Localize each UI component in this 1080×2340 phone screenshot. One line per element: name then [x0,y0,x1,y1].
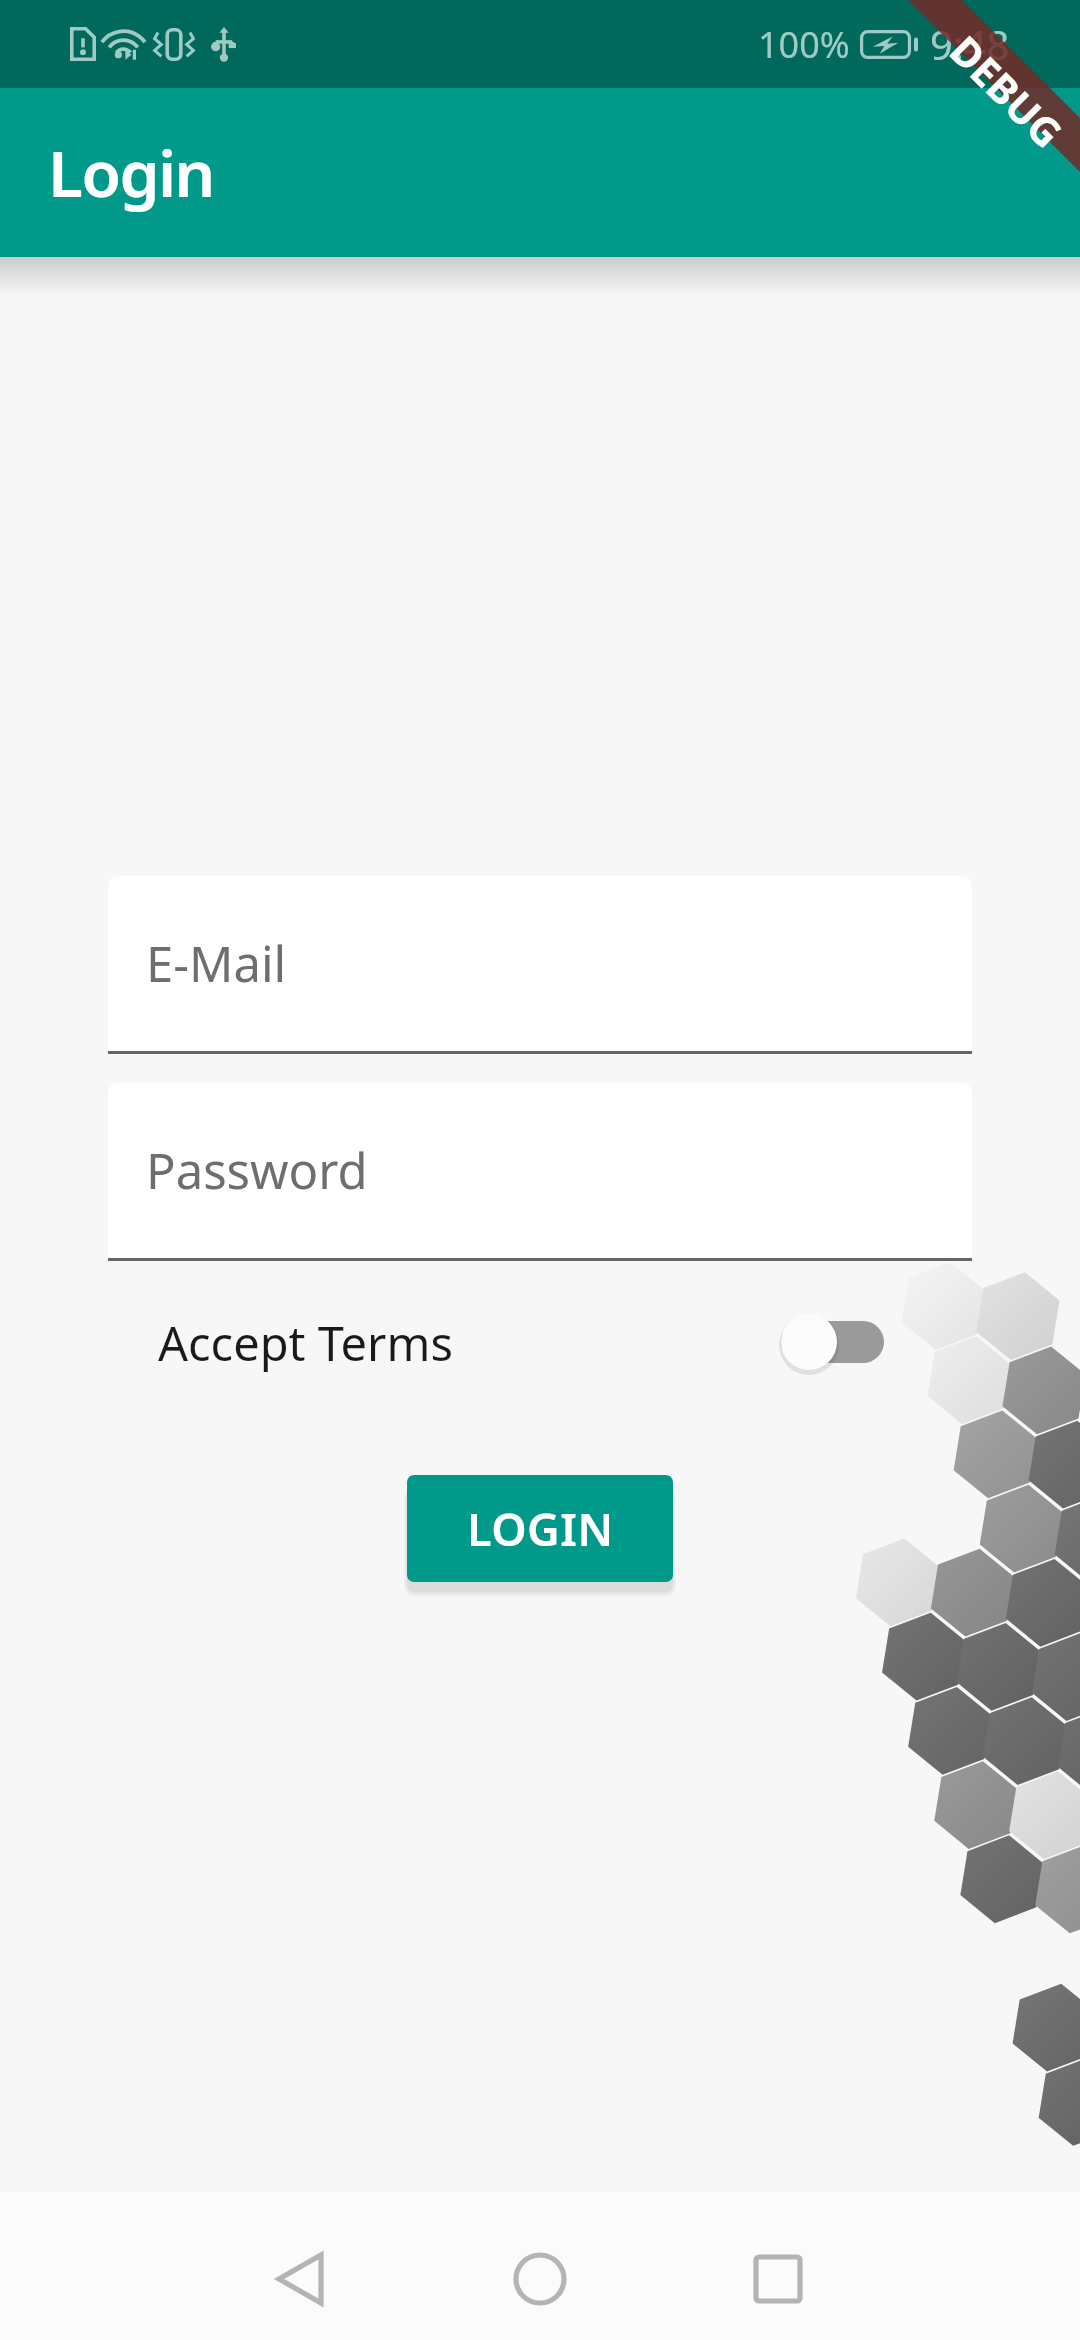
button[interactable]: LOGIN [407,1475,673,1582]
button[interactable]: Accept Terms [158,1311,884,1373]
staticText: 100% [758,20,850,69]
staticText: E-Mail [146,930,287,997]
staticText: LOGIN [467,1498,614,1559]
staticText: Login [48,129,214,216]
button[interactable]: Password [108,1083,972,1258]
staticText: Password [146,1137,368,1204]
staticText: Accept Terms [158,1311,453,1373]
button[interactable]: Back [228,2218,372,2340]
button[interactable]: Home [468,2218,612,2340]
button[interactable]: Recent apps [706,2218,850,2340]
staticText: DEBUG [939,23,1075,159]
staticText: 9:48 [930,17,1010,71]
button[interactable]: E-Mail [108,876,972,1051]
